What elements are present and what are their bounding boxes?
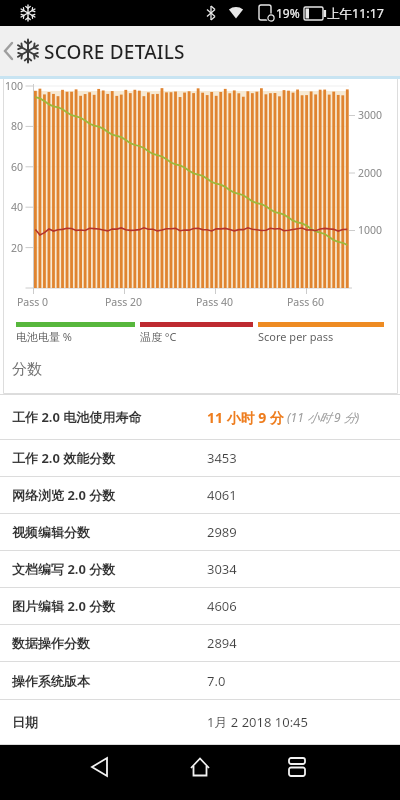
staticText: 3034 <box>207 560 237 578</box>
staticText: 2000 <box>358 166 383 180</box>
staticText: 80 <box>11 119 24 133</box>
button[interactable]: 工作 2.0 电池使用寿命 <box>0 395 400 439</box>
staticText: 11 小时 9 分 <box>207 408 284 427</box>
button[interactable] <box>176 745 224 800</box>
staticText: 1000 <box>358 223 383 237</box>
staticText: 1月 2 2018 10:45 <box>207 713 308 731</box>
button[interactable]: 数据操作分数 <box>0 625 400 661</box>
staticText: 20 <box>11 241 24 255</box>
staticText: 分数 <box>12 360 42 379</box>
staticText: Pass 20 <box>105 295 143 309</box>
staticText: 19% <box>276 5 300 21</box>
staticText: Pass 0 <box>17 295 49 309</box>
staticText: Pass 60 <box>287 295 325 309</box>
staticText: 3000 <box>358 108 383 122</box>
staticText: 2989 <box>207 523 237 541</box>
button[interactable] <box>273 745 321 800</box>
staticText: 图片编辑 2.0 分数 <box>12 597 116 615</box>
button[interactable]: 操作系统版本 <box>0 662 400 699</box>
staticText: 上午11:17 <box>327 5 384 22</box>
staticText: 100 <box>5 79 24 93</box>
staticText: 60 <box>11 160 24 174</box>
staticText: 操作系统版本 <box>12 673 90 689</box>
staticText: 工作 2.0 效能分数 <box>12 449 116 467</box>
button[interactable]: 日期 <box>0 700 400 744</box>
button[interactable] <box>0 26 20 76</box>
staticText: 温度 °C <box>140 329 177 344</box>
staticText: Pass 40 <box>196 295 234 309</box>
staticText: 4061 <box>207 486 237 504</box>
button[interactable]: 网络浏览 2.0 分数 <box>0 477 400 513</box>
staticText: Score per pass <box>258 329 334 344</box>
staticText: 3453 <box>207 449 237 467</box>
staticText: 7.0 <box>207 672 226 690</box>
staticText: 网络浏览 2.0 分数 <box>12 486 116 504</box>
staticText: 文档编写 2.0 分数 <box>12 560 116 578</box>
staticText: 4606 <box>207 597 237 615</box>
button[interactable]: 工作 2.0 效能分数 <box>0 440 400 476</box>
staticText: SCORE DETAILS <box>44 39 185 65</box>
staticText: 电池电量 % <box>16 329 73 344</box>
button[interactable]: 图片编辑 2.0 分数 <box>0 588 400 624</box>
button[interactable] <box>76 745 124 800</box>
staticText: 工作 2.0 电池使用寿命 <box>12 408 142 426</box>
button[interactable]: 视频编辑分数 <box>0 514 400 550</box>
staticText: 视频编辑分数 <box>12 524 90 540</box>
staticText: (11 小时 9 分) <box>284 409 360 425</box>
staticText: 40 <box>11 200 24 214</box>
staticText: 日期 <box>12 714 38 730</box>
staticText: 数据操作分数 <box>12 635 90 651</box>
staticText: 2894 <box>207 634 237 652</box>
button[interactable]: 文档编写 2.0 分数 <box>0 551 400 587</box>
